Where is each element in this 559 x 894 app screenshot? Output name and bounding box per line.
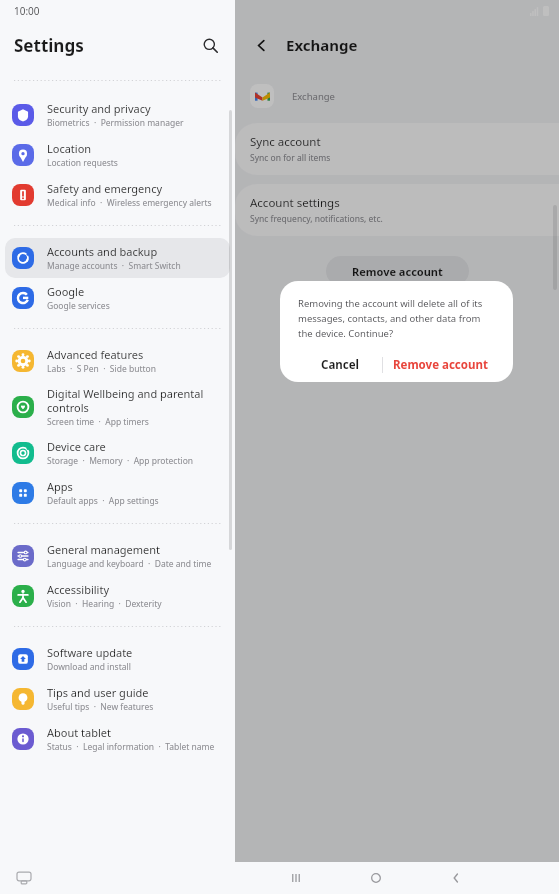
button[interactable]: Search	[197, 32, 223, 58]
staticText: Settings	[14, 34, 84, 57]
staticText: Storage · Memory · App protection	[47, 455, 194, 467]
staticText: Account settings	[250, 195, 340, 211]
staticText: Security and privacy	[47, 101, 151, 116]
button[interactable]: Remove account	[326, 256, 469, 286]
staticText: Digital Wellbeing and parental controls	[47, 386, 223, 415]
button[interactable]: Home	[364, 866, 388, 890]
staticText: Manage accounts · Smart Switch	[47, 260, 181, 272]
button[interactable]: Safety and emergency	[5, 175, 230, 215]
staticText: Cancel	[321, 357, 359, 373]
staticText: Google services	[47, 300, 110, 312]
button[interactable]: Back	[248, 32, 274, 58]
staticText: About tablet	[47, 725, 111, 740]
button[interactable]: Account settings	[235, 184, 559, 236]
staticText: Apps	[47, 479, 73, 494]
staticText: Vision · Hearing · Dexterity	[47, 598, 162, 610]
staticText: Accounts and backup	[47, 244, 158, 259]
button[interactable]: Location	[5, 135, 230, 175]
button[interactable]: Sync account	[235, 123, 559, 175]
staticText: Exchange	[286, 35, 358, 55]
button[interactable]: Cancel	[298, 348, 382, 382]
staticText: Device care	[47, 439, 106, 454]
button[interactable]: Security and privacy	[5, 95, 230, 135]
button[interactable]: Accessibility	[5, 576, 230, 616]
button[interactable]: Remove account	[383, 348, 497, 382]
staticText: Software update	[47, 645, 133, 660]
staticText: Sync account	[250, 134, 321, 150]
button[interactable]: Software update	[5, 639, 230, 679]
staticText: Remove account	[393, 357, 488, 373]
staticText: 10:00	[14, 4, 40, 18]
staticText: Tips and user guide	[47, 685, 149, 700]
staticText: Status · Legal information · Tablet name	[47, 741, 215, 753]
staticText: Screen time · App timers	[47, 416, 149, 428]
staticText: Remove account	[352, 264, 443, 279]
button[interactable]: Screenshot	[14, 868, 34, 888]
button[interactable]: Back	[444, 866, 468, 890]
staticText: Advanced features	[47, 347, 144, 362]
staticText: Language and keyboard · Date and time	[47, 558, 212, 570]
button[interactable]: Google	[5, 278, 230, 318]
button[interactable]: Apps	[5, 473, 230, 513]
staticText: Sync frequency, notifications, etc.	[250, 213, 383, 225]
staticText: Download and install	[47, 661, 131, 673]
staticText: Location	[47, 141, 92, 156]
button[interactable]: Tips and user guide	[5, 679, 230, 719]
button[interactable]: Digital Wellbeing and parental controls	[5, 381, 230, 433]
button[interactable]: Recents	[284, 866, 308, 890]
staticText: Google	[47, 284, 85, 299]
button[interactable]: Device care	[5, 433, 230, 473]
staticText: General management	[47, 542, 161, 557]
button[interactable]: General management	[5, 536, 230, 576]
staticText: Location requests	[47, 157, 118, 169]
button[interactable]: Advanced features	[5, 341, 230, 381]
staticText: Biometrics · Permission manager	[47, 117, 184, 129]
staticText: Default apps · App settings	[47, 495, 159, 507]
button[interactable]: About tablet	[5, 719, 230, 759]
staticText: Safety and emergency	[47, 181, 163, 196]
staticText: Sync on for all items	[250, 152, 331, 164]
staticText: Labs · S Pen · Side button	[47, 363, 156, 375]
staticText: Accessibility	[47, 582, 110, 597]
staticText: Medical info · Wireless emergency alerts	[47, 197, 212, 209]
staticText: Removing the account will delete all of …	[298, 297, 497, 340]
button[interactable]: Accounts and backup	[5, 238, 230, 278]
staticText: Exchange	[292, 90, 335, 103]
staticText: Useful tips · New features	[47, 701, 154, 713]
